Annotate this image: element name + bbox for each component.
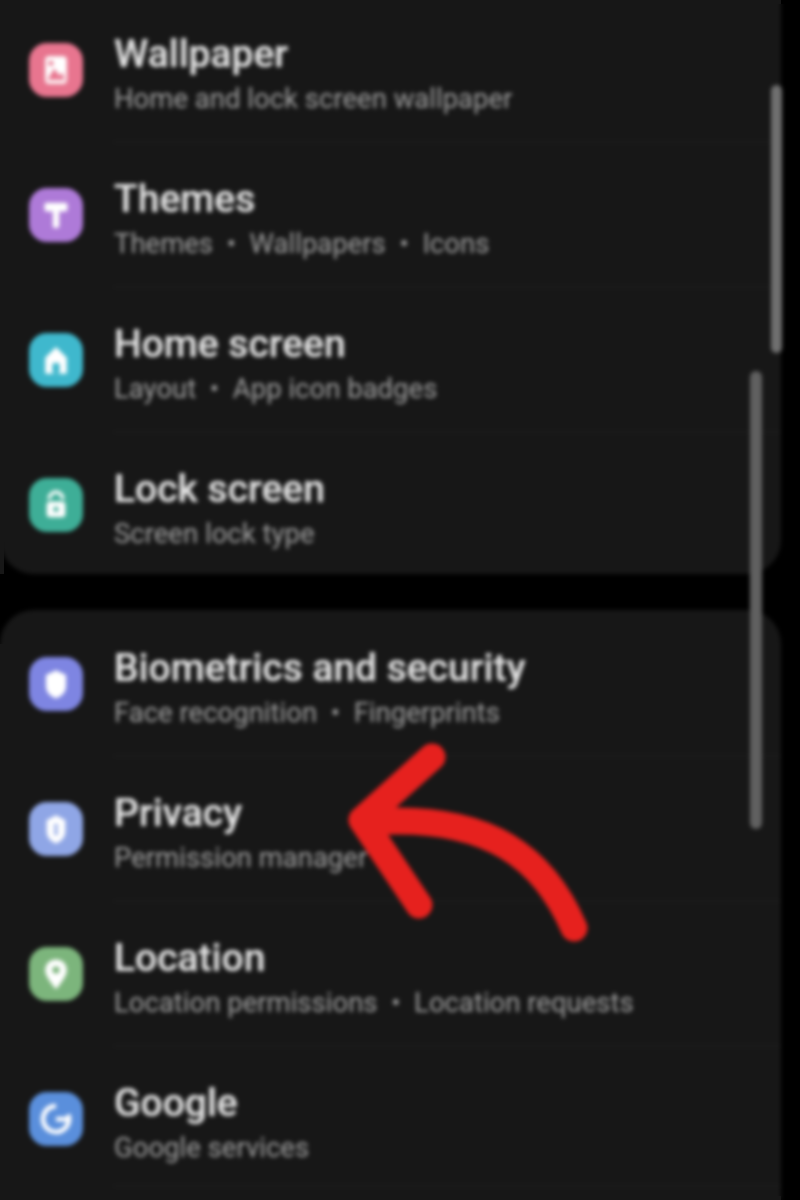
button[interactable]: Home screen [0,288,781,431]
staticText: Layout • App icon badges [114,372,438,404]
staticText: Wallpaper [114,31,289,77]
button[interactable]: Privacy [0,757,781,900]
button[interactable]: Lock screen [0,433,781,574]
staticText: Lock screen [114,466,325,512]
staticText: Google [114,1080,238,1126]
staticText: Google services [114,1131,310,1163]
staticText: Themes [114,176,256,222]
staticText: Themes • Wallpapers • Icons [114,227,490,259]
staticText: Location permissions • Location requests [114,986,634,1018]
other: Annotation arrow pointing at Privacy [0,0,800,1200]
staticText: Home screen [114,321,346,367]
button[interactable]: Wallpaper [0,0,781,141]
staticText: Location [114,935,266,981]
staticText: Face recognition • Fingerprints [114,696,500,728]
button[interactable]: Location [0,902,781,1045]
button[interactable]: Google [0,1047,781,1190]
staticText: Home and lock screen wallpaper [114,82,513,114]
staticText: Permission manager [114,841,368,873]
staticText: Privacy [114,790,243,836]
staticText: Screen lock type [114,517,315,549]
staticText: Biometrics and security [114,645,526,691]
button[interactable]: Biometrics and security [0,612,781,755]
button[interactable]: Themes [0,143,781,286]
